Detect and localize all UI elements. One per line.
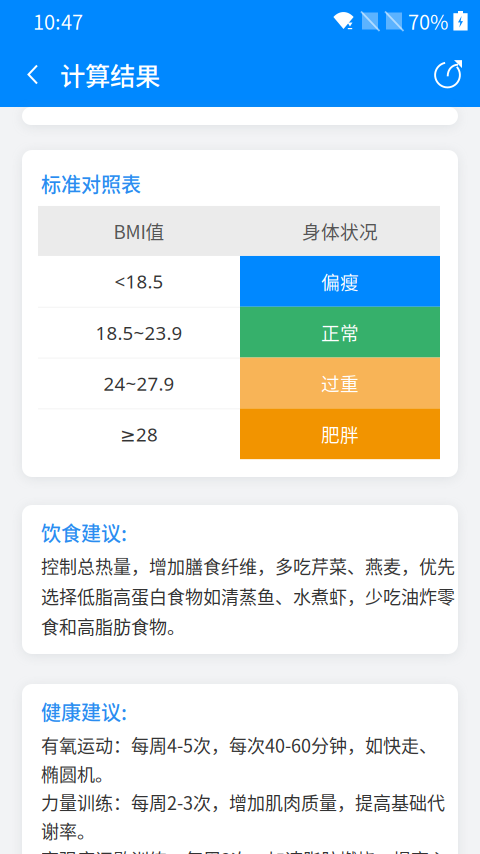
staticText: 标准对照表	[41, 169, 141, 198]
staticText: 过重	[321, 369, 359, 396]
staticText: 24~27.9	[103, 371, 174, 396]
staticText: BMI值	[113, 217, 164, 244]
staticText: 力量训练：每周2-3次，增加肌肉质量，提高基础代	[41, 789, 445, 815]
staticText: 饮食建议:	[41, 518, 127, 547]
staticText: 食和高脂肪食物。	[41, 613, 185, 639]
staticText: 椭圆机。	[41, 760, 113, 787]
staticText: ≥28	[120, 421, 158, 447]
staticText: 选择低脂高蛋白食物如清蒸鱼、水煮虾，少吃油炸零	[41, 583, 455, 609]
staticText: 控制总热量，增加膳食纤维，多吃芹菜、燕麦，优先	[41, 553, 455, 579]
staticText: 10:47	[33, 6, 83, 35]
staticText: 高强度间歇训练：每周2次，加速脂肪燃烧，提高心	[41, 846, 447, 854]
staticText: 70%	[408, 6, 448, 35]
staticText: 健康建议:	[41, 697, 127, 726]
staticText: 谢率。	[41, 818, 95, 844]
staticText: 偏瘦	[321, 268, 359, 295]
button[interactable]: 计算结果	[54, 42, 160, 107]
staticText: 18.5~23.9	[95, 320, 182, 345]
staticText: 正常	[321, 319, 359, 346]
staticText: 计算结果	[60, 56, 160, 93]
staticText: 身体状况	[302, 217, 378, 244]
staticText: <18.5	[114, 269, 163, 294]
staticText: 有氧运动：每周4-5次，每次40-60分钟，如快走、	[41, 732, 437, 758]
button[interactable]: Back	[12, 42, 54, 107]
staticText: 肥胖	[321, 420, 359, 447]
button[interactable]: Recalculate	[424, 42, 474, 107]
